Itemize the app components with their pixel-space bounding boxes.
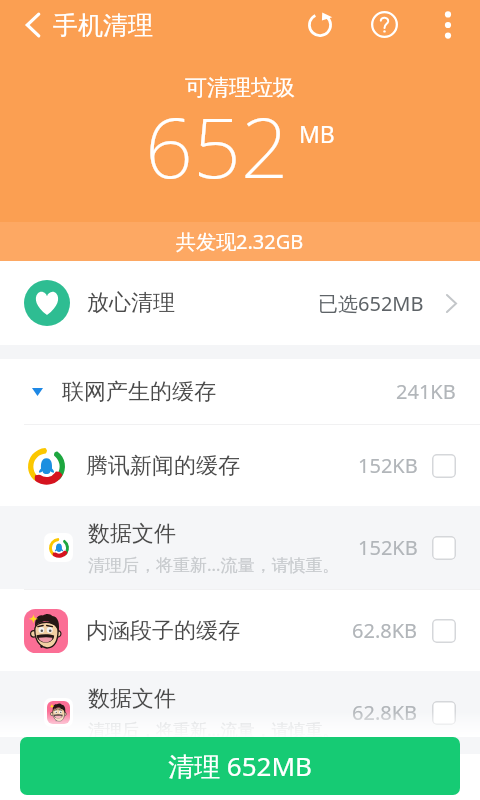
staticText: 清理后，将重新…流量，请慎重。: [88, 553, 340, 576]
button[interactable]: Back: [12, 0, 53, 49]
button[interactable]: 数据文件: [0, 506, 480, 589]
button[interactable]: 放心清理: [0, 261, 480, 345]
button[interactable]: Select item: [432, 619, 456, 643]
button[interactable]: More options: [415, 0, 480, 49]
staticText: 腾讯新闻的缓存: [86, 452, 240, 480]
staticText: 241KB: [396, 378, 456, 405]
button[interactable]: Refresh: [287, 0, 353, 49]
staticText: 152KB: [358, 534, 418, 561]
staticText: 62.8KB: [352, 617, 418, 644]
staticText: 数据文件: [88, 685, 176, 713]
staticText: 清理 652MB: [168, 748, 312, 784]
button[interactable]: 联网产生的缓存: [0, 359, 480, 424]
staticText: 放心清理: [87, 289, 175, 317]
button[interactable]: Help: [353, 0, 415, 49]
staticText: 联网产生的缓存: [62, 378, 216, 406]
button[interactable]: Select item: [432, 536, 456, 560]
button[interactable]: Select item: [432, 454, 456, 478]
staticText: 可清理垃圾: [185, 74, 295, 102]
staticText: 652: [145, 88, 289, 202]
staticText: 已选652MB: [318, 290, 424, 317]
staticText: 清理后，将重新…流量，请慎重。: [88, 718, 340, 741]
button[interactable]: 数据文件: [0, 671, 480, 754]
staticText: 62.8KB: [352, 699, 418, 726]
button[interactable]: Select item: [432, 701, 456, 725]
staticText: 共发现2.32GB: [176, 228, 304, 255]
staticText: 手机清理: [53, 10, 153, 41]
button[interactable]: 腾讯新闻的缓存: [0, 425, 480, 506]
button[interactable]: 清理 652MB: [20, 737, 460, 795]
staticText: 数据文件: [88, 520, 176, 548]
staticText: MB: [299, 118, 335, 149]
staticText: 152KB: [358, 452, 418, 479]
staticText: 内涵段子的缓存: [86, 617, 240, 645]
button[interactable]: 内涵段子的缓存: [0, 590, 480, 671]
